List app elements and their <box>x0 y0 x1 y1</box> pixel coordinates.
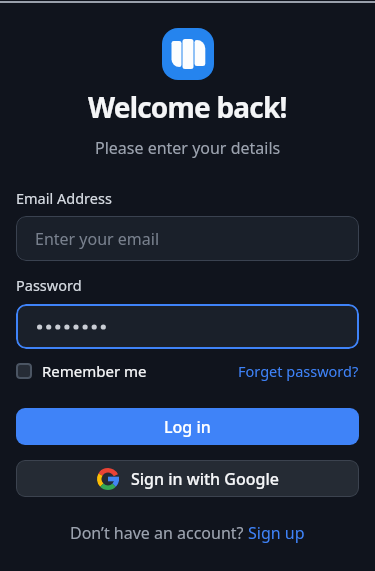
button[interactable]: Log in <box>16 408 359 445</box>
staticText: Email Address <box>16 188 112 208</box>
button[interactable]: Enter your email <box>16 216 359 261</box>
staticText: Sign in with Google <box>131 468 279 490</box>
button[interactable]: Remember me <box>16 361 147 381</box>
button[interactable]: Sign in with Google <box>16 460 359 497</box>
staticText: Password <box>16 275 82 295</box>
staticText: Remember me <box>42 361 147 381</box>
staticText: Log in <box>164 416 211 438</box>
staticText: Don’t have an account? <box>70 522 248 544</box>
staticText: Please enter your details <box>95 137 281 159</box>
staticText: Enter your email <box>35 228 160 250</box>
button[interactable]: Sign up <box>248 522 305 544</box>
staticText: Welcome back! <box>88 88 287 126</box>
button[interactable] <box>16 304 359 349</box>
button[interactable]: Forget password? <box>238 361 359 381</box>
